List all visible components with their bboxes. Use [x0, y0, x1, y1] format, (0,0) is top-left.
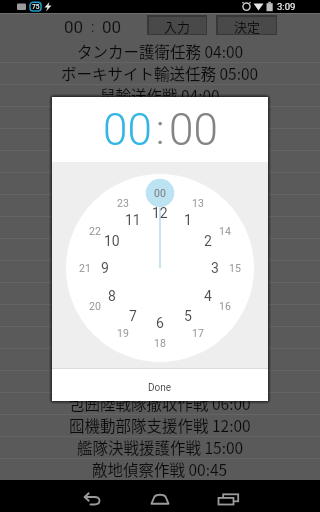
staticText: 11 — [125, 212, 141, 228]
button[interactable] — [142, 484, 178, 510]
staticText: 強行偵察任務 01:30 — [92, 260, 228, 282]
staticText: 包囲陸戦隊撤収作戦 06:00 — [69, 392, 251, 414]
button[interactable]: 海峡警備行動 00:55 — [0, 216, 320, 238]
staticText: ボーキサイト輸送任務 05:00 — [61, 62, 259, 84]
staticText: 20 — [89, 300, 101, 312]
button[interactable]: 防空射撃演習 00:40 — [0, 128, 320, 150]
staticText: 75 — [32, 3, 40, 11]
staticText: 海峡警備行動 00:55 — [92, 216, 228, 238]
staticText: 決定 — [234, 17, 261, 34]
button[interactable]: 東京急行 02:45 — [0, 370, 320, 392]
button[interactable]: 艦隊決戦援護作戦 15:00 — [0, 436, 320, 458]
staticText: 00 — [103, 104, 152, 156]
staticText: 12 — [152, 205, 168, 221]
button[interactable]: 鼠輸送作戦 04:00 — [0, 84, 320, 106]
staticText: 00 — [154, 187, 166, 199]
staticText: 8 — [108, 288, 116, 304]
button[interactable] — [210, 484, 246, 510]
staticText: 艦隊決戦援護作戦 15:00 — [77, 436, 244, 458]
staticText: 海上護衛任務 01:30 — [92, 106, 228, 128]
staticText: 南方への輸送作戦 05:00 — [77, 282, 244, 304]
staticText: 敵地偵察作戦 00:45 — [92, 458, 228, 480]
staticText: 鼠輸送作戦 04:00 — [100, 84, 220, 106]
staticText: 5 — [184, 308, 192, 324]
staticText: 防空射撃演習 00:40 — [92, 128, 228, 150]
button[interactable]: 強行偵察任務 01:30 — [0, 260, 320, 282]
button[interactable]: 包囲陸戦隊撤収作戦 06:00 — [0, 392, 320, 414]
button[interactable]: 囮機動部隊支援作戦 12:00 — [0, 414, 320, 436]
staticText: 入力 — [164, 17, 191, 34]
button[interactable]: 北方鼠輸送作戦 08:00 — [0, 348, 320, 370]
staticText: 兵站強化任務 00:25 — [92, 194, 228, 216]
button[interactable]: 海上護衛任務 01:30 — [0, 106, 320, 128]
staticText: タンカー護衛任務 04:00 — [77, 40, 244, 62]
staticText: 00 — [102, 17, 122, 37]
staticText: 22 — [89, 225, 101, 237]
staticText: 遠洋練習航海 08:00 — [92, 304, 228, 326]
staticText: : — [156, 107, 165, 154]
staticText: 21 — [79, 262, 91, 274]
button[interactable]: 遠洋練習航海 08:00 — [0, 304, 320, 326]
button[interactable]: 水上機基地建設 09:00 — [0, 326, 320, 348]
staticText: 3 — [211, 260, 219, 276]
staticText: 16 — [219, 300, 231, 312]
staticText: 7 — [129, 308, 137, 324]
button[interactable]: 南方への輸送作戦 05:00 — [0, 282, 320, 304]
staticText: 00 — [169, 104, 218, 156]
staticText: 長時間対潜警戒 02:15 — [85, 238, 236, 260]
staticText: 水上機基地建設 09:00 — [85, 326, 236, 348]
staticText: Done — [148, 382, 172, 394]
button[interactable]: Done — [52, 373, 268, 403]
staticText: 23 — [117, 197, 129, 209]
button[interactable]: 観艦式予行 01:00 — [0, 150, 320, 172]
staticText: 13 — [192, 197, 204, 209]
staticText: 00 — [64, 17, 84, 37]
button[interactable]: ボーキサイト輸送任務 05:00 — [0, 62, 320, 84]
staticText: 観艦式 03:00 — [116, 172, 205, 194]
button[interactable] — [74, 484, 110, 510]
staticText: 囮機動部隊支援作戦 12:00 — [69, 414, 251, 436]
staticText: : — [91, 19, 95, 35]
staticText: 北方鼠輸送作戦 08:00 — [85, 348, 236, 370]
button[interactable]: タンカー護衛任務 04:00 — [0, 40, 320, 62]
staticText: 2 — [204, 233, 212, 249]
staticText: 4 — [204, 288, 212, 304]
staticText: 10 — [104, 233, 120, 249]
button[interactable]: 観艦式 03:00 — [0, 172, 320, 194]
button[interactable]: 決定 — [216, 15, 277, 35]
staticText: 3:09 — [277, 1, 296, 12]
staticText: 14 — [219, 225, 231, 237]
staticText: 9 — [101, 260, 109, 276]
staticText: 1 — [184, 212, 192, 228]
staticText: 17 — [192, 327, 204, 339]
staticText: 18 — [154, 337, 166, 349]
button[interactable]: 敵地偵察作戦 00:45 — [0, 458, 320, 480]
staticText: 観艦式予行 01:00 — [100, 150, 220, 172]
button[interactable]: 長時間対潜警戒 02:15 — [0, 238, 320, 260]
staticText: 6 — [156, 315, 164, 331]
button[interactable]: 兵站強化任務 00:25 — [0, 194, 320, 216]
staticText: 19 — [117, 327, 129, 339]
staticText: 15 — [229, 262, 241, 274]
staticText: 東京急行 02:45 — [108, 370, 213, 392]
button[interactable]: 入力 — [147, 15, 207, 35]
